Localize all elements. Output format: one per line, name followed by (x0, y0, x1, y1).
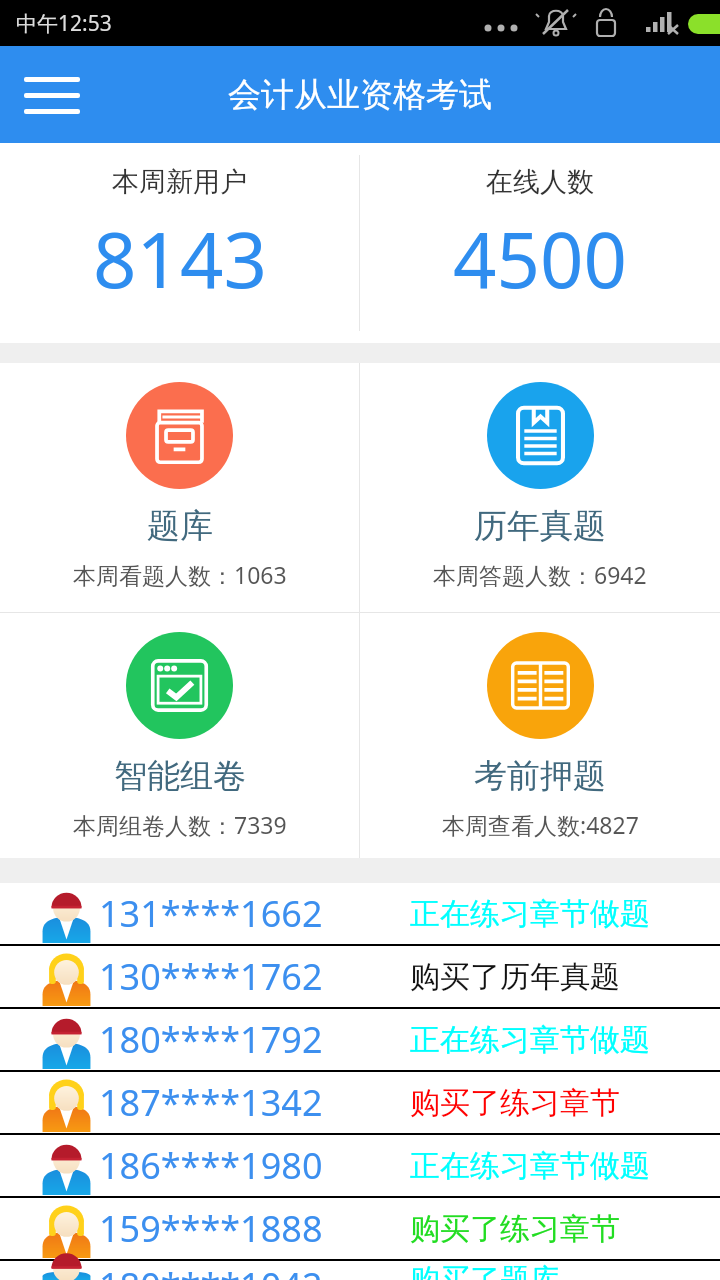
button[interactable]: 考前押题 (360, 613, 720, 858)
button[interactable]: 186****1980 (0, 1135, 720, 1196)
staticText: 130****1762 (99, 952, 323, 1001)
staticText: 购买了题库 (410, 1261, 660, 1280)
button[interactable]: 本周新用户 (0, 143, 359, 343)
staticText: 正在练习章节做题 (410, 895, 660, 933)
button[interactable]: 智能组卷 (0, 613, 359, 858)
button[interactable]: 题库 (0, 363, 359, 612)
staticText: 187****1342 (99, 1078, 323, 1127)
button[interactable]: 180****1792 (0, 1009, 720, 1070)
button[interactable]: 130****1762 (0, 946, 720, 1007)
staticText: 历年真题 (474, 505, 606, 547)
staticText: 购买了练习章节 (410, 1084, 660, 1122)
button[interactable]: 历年真题 (360, 363, 720, 612)
staticText: 131****1662 (99, 889, 323, 938)
button[interactable]: 131****1662 (0, 883, 720, 944)
staticText: 本周查看人数:4827 (442, 809, 639, 840)
staticText: 购买了练习章节 (410, 1210, 660, 1248)
staticText: 本周看题人数：1063 (73, 559, 287, 590)
staticText: 题库 (147, 505, 213, 547)
staticText: 购买了历年真题 (410, 958, 660, 996)
staticText: 在线人数 (486, 165, 594, 199)
staticText: 8143 (93, 207, 267, 311)
staticText: 159****1888 (99, 1204, 323, 1253)
staticText: 180****1792 (99, 1015, 323, 1064)
button[interactable]: 180****1042 (0, 1261, 720, 1280)
staticText: 考前押题 (474, 755, 606, 797)
staticText: 智能组卷 (114, 755, 246, 797)
button[interactable]: 159****1888 (0, 1198, 720, 1259)
staticText: 正在练习章节做题 (410, 1021, 660, 1059)
staticText: 本周答题人数：6942 (433, 559, 647, 590)
button[interactable]: Menu (10, 60, 94, 130)
staticText: 180****1042 (99, 1261, 323, 1280)
staticText: 中午12:53 (16, 9, 112, 38)
staticText: 本周新用户 (112, 165, 247, 199)
staticText: 4500 (453, 207, 627, 311)
staticText: 正在练习章节做题 (410, 1147, 660, 1185)
staticText: 186****1980 (99, 1141, 323, 1190)
staticText: 本周组卷人数：7339 (73, 809, 287, 840)
staticText: 会计从业资格考试 (228, 74, 492, 116)
button[interactable]: 在线人数 (360, 143, 720, 343)
button[interactable]: 187****1342 (0, 1072, 720, 1133)
